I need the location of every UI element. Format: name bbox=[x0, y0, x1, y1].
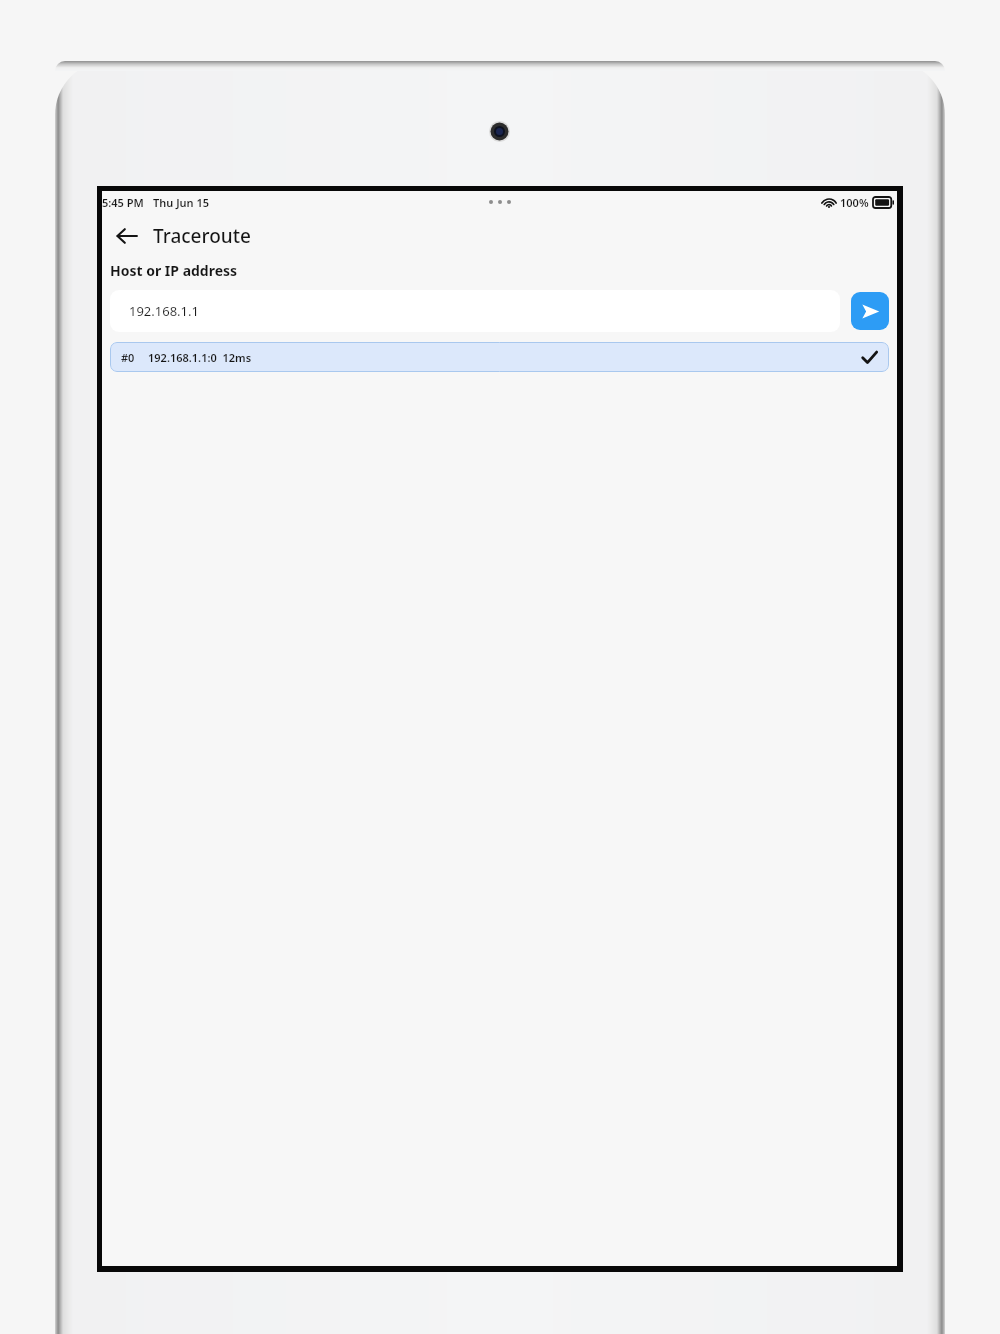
staticText: Thu Jun 15 bbox=[153, 195, 210, 210]
staticText: 192.168.1.1:0 12ms bbox=[148, 350, 252, 365]
button[interactable]: Back bbox=[110, 219, 144, 253]
button[interactable]: Send bbox=[851, 292, 889, 330]
staticText: #0 bbox=[121, 350, 135, 365]
button[interactable]: 192.168.1.1 bbox=[110, 290, 840, 332]
staticText: Traceroute bbox=[153, 223, 251, 249]
staticText: 100% bbox=[840, 195, 869, 210]
staticText: 192.168.1.1 bbox=[129, 302, 199, 320]
button[interactable]: #0 bbox=[110, 342, 889, 372]
staticText: Host or IP address bbox=[110, 261, 238, 280]
staticText: 5:45 PM bbox=[102, 195, 144, 210]
